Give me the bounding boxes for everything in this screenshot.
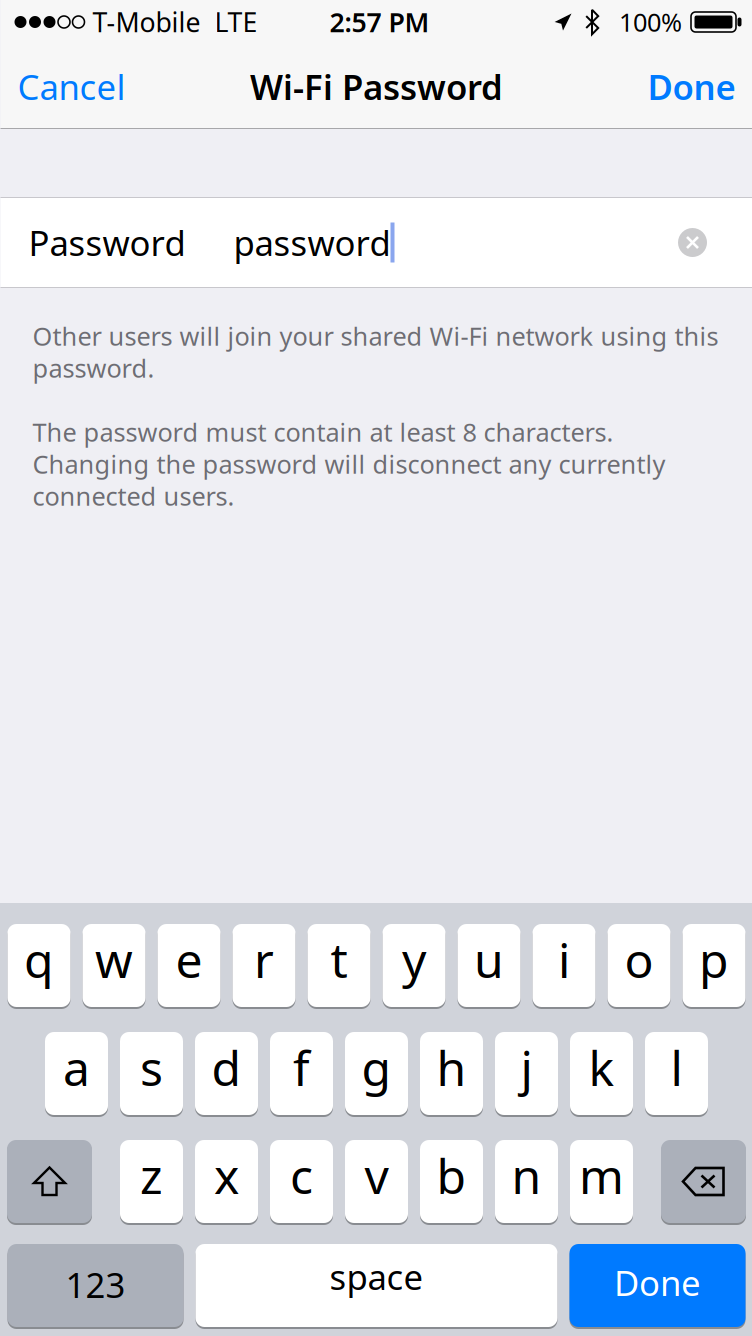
staticText: Cancel [17,63,125,109]
staticText: y [402,928,426,991]
button[interactable]: p [682,923,745,1008]
staticText: password. [32,351,154,385]
button[interactable]: k [570,1031,633,1116]
button[interactable]: h [420,1031,483,1116]
staticText: x [214,1144,239,1207]
staticText: b [436,1144,466,1207]
staticText: T-Mobile [92,4,200,40]
staticText: 100% [619,5,682,39]
staticText: j [520,1036,532,1099]
staticText: Wi-Fi Password [250,63,503,109]
staticText: password [233,219,390,265]
staticText: q [24,928,54,991]
staticText: 123 [65,1261,125,1307]
button[interactable]: z [120,1139,183,1224]
button[interactable]: n [495,1139,558,1224]
button[interactable]: g [345,1031,408,1116]
button[interactable]: d [195,1031,258,1116]
button[interactable]: Password [0,198,752,287]
button[interactable]: q [7,923,70,1008]
button[interactable]: r [232,923,295,1008]
button[interactable]: Shift [7,1139,92,1224]
staticText: c [290,1144,313,1207]
staticText: d [211,1036,241,1099]
staticText: s [140,1036,163,1099]
staticText: g [361,1036,391,1099]
button[interactable]: y [382,923,445,1008]
button[interactable]: 123 [7,1243,183,1328]
button[interactable]: Delete [661,1139,746,1224]
staticText: o [624,928,653,991]
staticText: f [293,1036,310,1099]
staticText: h [436,1036,466,1099]
staticText: LTE [214,4,257,40]
staticText: i [558,928,570,991]
staticText: connected users. [32,479,234,513]
staticText: t [330,928,347,991]
button[interactable]: i [532,923,595,1008]
staticText: p [699,928,729,991]
button[interactable]: Done [631,44,751,128]
button[interactable]: Done [569,1243,745,1328]
button[interactable]: j [495,1031,558,1116]
staticText: l [670,1036,682,1099]
staticText: Changing the password will disconnect an… [32,447,665,481]
button[interactable]: o [607,923,670,1008]
staticText: Password [28,219,185,265]
staticText: n [511,1144,541,1207]
staticText: r [254,928,274,991]
button[interactable]: Cancel [1,44,141,128]
staticText: Done [647,63,735,109]
button[interactable]: t [307,923,370,1008]
button[interactable]: e [157,923,220,1008]
button[interactable]: space [195,1243,557,1328]
staticText: Other users will join your shared Wi-Fi … [32,319,718,353]
button[interactable]: Clear text [674,224,710,260]
button[interactable]: l [645,1031,708,1116]
button[interactable]: w [82,923,145,1008]
staticText: The password must contain at least 8 cha… [32,415,613,449]
staticText: a [63,1036,90,1099]
staticText: Done [614,1259,701,1305]
staticText: m [579,1144,624,1207]
button[interactable]: b [420,1139,483,1224]
button[interactable]: s [120,1031,183,1116]
button[interactable]: x [195,1139,258,1224]
staticText: z [140,1144,163,1207]
staticText: e [175,928,202,991]
button[interactable]: c [270,1139,333,1224]
button[interactable]: f [270,1031,333,1116]
button[interactable]: u [457,923,520,1008]
button[interactable]: v [345,1139,408,1224]
staticText: k [588,1036,614,1099]
staticText: v [364,1144,388,1207]
staticText: u [474,928,504,991]
staticText: 2:57 PM [329,4,429,40]
button[interactable]: a [45,1031,108,1116]
staticText: w [95,928,133,991]
button[interactable]: m [570,1139,633,1224]
staticText: space [329,1253,423,1299]
